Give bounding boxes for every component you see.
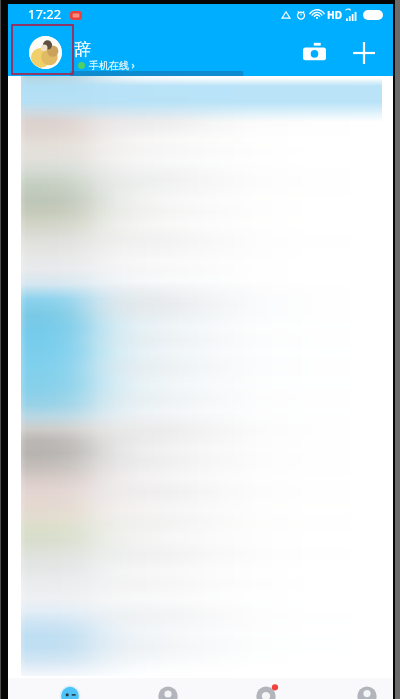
button[interactable]: Add — [344, 33, 384, 73]
button[interactable]: Discover — [252, 678, 280, 699]
button[interactable]: Camera — [294, 32, 334, 72]
staticText: 辞 — [74, 39, 91, 60]
button[interactable]: Profile avatar — [29, 36, 62, 69]
button[interactable]: 手机在线 › — [78, 58, 135, 72]
button[interactable]: Contacts — [154, 678, 182, 699]
button[interactable]: Messages — [56, 678, 84, 699]
staticText: 手机在线 › — [89, 58, 135, 72]
staticText: HD — [327, 8, 342, 22]
staticText: 17:22 — [28, 5, 62, 23]
button[interactable]: Me — [353, 678, 381, 699]
